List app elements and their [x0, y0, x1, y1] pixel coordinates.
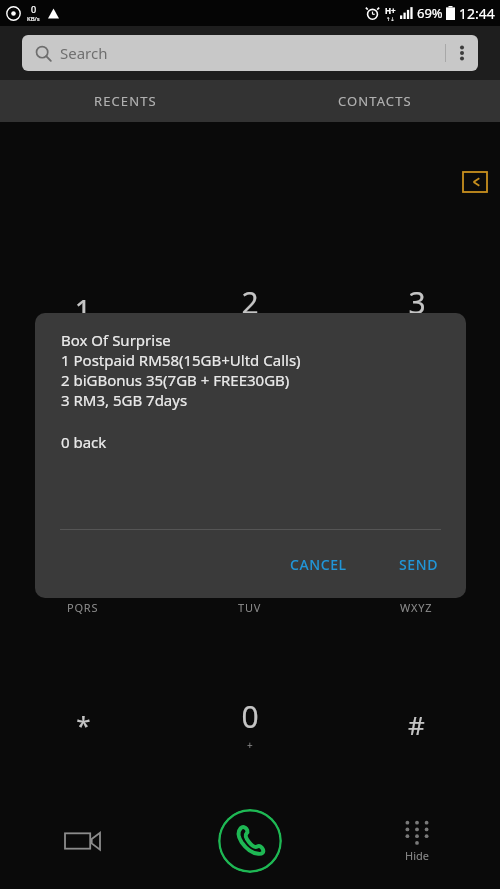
staticText: 2 biGBonus 35(7GB + FREE30GB)	[61, 370, 290, 390]
button[interactable]: 0	[166, 655, 333, 793]
staticText: H+	[385, 5, 396, 16]
staticText: 69%	[417, 4, 443, 22]
staticText: 3 RM3, 5GB 7days	[61, 390, 188, 410]
button[interactable]: Backspace	[460, 169, 490, 195]
staticText: SEND	[399, 555, 438, 574]
staticText: CANCEL	[290, 555, 347, 574]
staticText: WXYZ	[400, 600, 433, 615]
staticText: CONTACTS	[338, 92, 412, 110]
staticText: #	[408, 707, 425, 742]
staticText: 2	[241, 282, 259, 323]
staticText: 0 back	[61, 432, 107, 452]
button[interactable]: More options	[446, 35, 478, 71]
staticText: 9	[408, 558, 426, 599]
button[interactable]: Hide	[333, 793, 500, 889]
staticText: 3	[408, 282, 426, 323]
button[interactable]: Search	[22, 35, 478, 71]
staticText: 12:44	[459, 4, 495, 23]
staticText: KB/s	[27, 15, 40, 23]
button[interactable]: SEND	[385, 545, 452, 584]
button[interactable]: 2	[166, 242, 333, 379]
button[interactable]: *	[0, 655, 166, 793]
staticText: RECENTS	[94, 92, 157, 110]
button[interactable]: 3	[333, 242, 500, 379]
staticText: 0	[31, 3, 37, 15]
button[interactable]: 9	[333, 517, 500, 655]
button[interactable]: Video call	[0, 793, 166, 889]
staticText: Hide	[405, 848, 429, 863]
staticText: +	[247, 738, 254, 752]
staticText: PQRS	[67, 600, 99, 615]
staticText: 8	[241, 558, 259, 599]
staticText: 7	[74, 558, 92, 599]
button[interactable]: CONTACTS	[250, 80, 500, 122]
button[interactable]: Call	[218, 809, 282, 873]
button[interactable]: 1	[0, 242, 166, 379]
button[interactable]: 6	[333, 379, 500, 517]
button[interactable]: 4	[0, 379, 166, 517]
staticText: *	[76, 707, 91, 742]
staticText: 4	[75, 420, 93, 461]
staticText: Box Of Surprise	[61, 330, 171, 350]
button[interactable]: #	[333, 655, 500, 793]
button[interactable]: 7	[0, 517, 166, 655]
staticText: 1 Postpaid RM58(15GB+Ultd Calls)	[61, 350, 301, 370]
button[interactable]: 8	[166, 517, 333, 655]
button[interactable]: CANCEL	[276, 545, 361, 584]
button[interactable]: RECENTS	[0, 80, 250, 122]
staticText: Search	[60, 43, 108, 63]
staticText: 1	[74, 290, 92, 331]
staticText: TUV	[238, 600, 262, 615]
staticText: 0	[241, 696, 259, 737]
button[interactable]: 5	[166, 379, 333, 517]
staticText: ↑↓	[386, 16, 395, 22]
